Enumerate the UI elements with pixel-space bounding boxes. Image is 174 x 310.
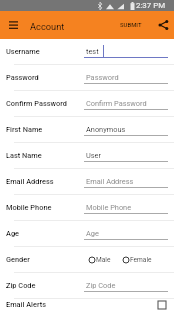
staticText: First Name <box>6 125 43 134</box>
button[interactable]: Email Address <box>0 169 174 195</box>
staticText: Mobile Phone <box>86 203 132 212</box>
staticText: Account <box>30 21 65 32</box>
button[interactable]: SUBMIT <box>117 15 145 36</box>
staticText: Mobile Phone <box>6 203 52 212</box>
button[interactable]: Female <box>122 256 152 264</box>
button[interactable]: First Name <box>0 117 174 143</box>
button[interactable]: Open navigation menu <box>4 11 22 39</box>
staticText: Anonymous <box>86 125 126 134</box>
button[interactable]: Share <box>152 11 174 39</box>
staticText: Email Address <box>86 177 134 186</box>
staticText: Email Alerts <box>6 300 47 309</box>
button[interactable]: Username <box>0 39 174 65</box>
staticText: SUBMIT <box>120 22 142 29</box>
staticText: test <box>86 47 99 56</box>
staticText: Gender <box>6 255 30 264</box>
button[interactable]: Email Alerts <box>0 292 174 310</box>
button[interactable]: Zip Code <box>0 273 174 299</box>
button[interactable]: Password <box>0 65 174 91</box>
button[interactable]: Mobile Phone <box>0 195 174 221</box>
staticText: User <box>86 151 102 160</box>
staticText: Confirm Password <box>6 99 67 108</box>
staticText: Email Address <box>6 177 54 186</box>
staticText: Confirm Password <box>86 99 147 108</box>
button[interactable]: Gender <box>0 247 174 273</box>
staticText: Password <box>6 73 39 82</box>
staticText: Last Name <box>6 151 42 160</box>
staticText: Username <box>6 47 40 56</box>
staticText: Age <box>6 229 20 238</box>
button[interactable]: Email alerts checkbox <box>156 299 168 310</box>
staticText: Zip Code <box>6 281 36 290</box>
button[interactable]: Last Name <box>0 143 174 169</box>
button[interactable]: Male <box>88 256 111 264</box>
staticText: 2:37 PM <box>136 1 166 10</box>
staticText: Male <box>96 256 111 264</box>
staticText: Age <box>86 229 99 238</box>
button[interactable]: Confirm Password <box>0 91 174 117</box>
staticText: Female <box>130 256 152 264</box>
staticText: Zip Code <box>86 281 116 290</box>
button[interactable]: Age <box>0 221 174 247</box>
staticText: Password <box>86 73 119 82</box>
